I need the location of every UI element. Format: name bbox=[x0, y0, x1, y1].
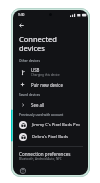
staticText: Previously used with account bbox=[19, 113, 64, 117]
staticText: Debra's Pixel Buds bbox=[32, 134, 69, 140]
staticText: Saved devices bbox=[19, 93, 41, 97]
button[interactable]: Help bbox=[19, 167, 26, 174]
button[interactable]: Connection preferences bbox=[13, 150, 88, 162]
button[interactable]: Pair new device bbox=[13, 79, 88, 90]
staticText: Jimmy C's Pixel Buds Pro bbox=[32, 122, 80, 128]
button[interactable]: Debra's Pixel Buds bbox=[13, 131, 88, 143]
staticText: Connected devices bbox=[19, 34, 82, 53]
button[interactable]: Jimmy C's Pixel Buds Pro bbox=[13, 119, 88, 131]
staticText: USB bbox=[31, 67, 40, 73]
button[interactable]: USB bbox=[13, 65, 88, 79]
button[interactable]: Back bbox=[17, 21, 25, 29]
button[interactable]: See all bbox=[13, 99, 88, 110]
staticText: Bluetooth, Android Auto, NFC bbox=[19, 157, 62, 161]
staticText: Connection preferences bbox=[19, 151, 71, 157]
staticText: Other devices bbox=[19, 59, 40, 63]
staticText: Charging this device bbox=[31, 73, 60, 77]
staticText: 9:30 bbox=[18, 13, 25, 17]
staticText: See all bbox=[31, 102, 45, 108]
staticText: Pair new device bbox=[31, 82, 63, 88]
